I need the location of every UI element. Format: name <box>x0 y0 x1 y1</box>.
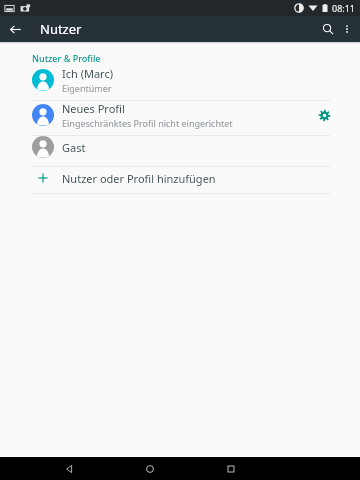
button[interactable]: Zurück <box>4 18 26 40</box>
button[interactable]: Suchen <box>317 18 339 40</box>
staticText: Nutzer <box>40 20 82 38</box>
button[interactable]: Zurück <box>58 458 80 480</box>
staticText: Eingeschränktes Profil nicht eingerichte… <box>62 117 233 129</box>
staticText: 08:11 <box>332 2 356 14</box>
button[interactable]: Profileinstellungen <box>312 103 336 127</box>
button[interactable]: Gast <box>0 136 360 166</box>
staticText: Gast <box>62 140 86 155</box>
staticText: Eigentümer <box>62 82 112 94</box>
staticText: Neues Profil <box>62 101 125 116</box>
staticText: Nutzer oder Profil hinzufügen <box>62 171 216 186</box>
button[interactable]: Weitere Optionen <box>337 19 357 39</box>
button[interactable]: Startbildschirm <box>139 458 161 480</box>
button[interactable]: Nutzer oder Profil hinzufügen <box>0 167 360 193</box>
staticText: Nutzer & Profile <box>32 52 101 64</box>
button[interactable]: Übersicht <box>220 458 242 480</box>
button[interactable]: Neues Profil <box>0 101 360 135</box>
button[interactable]: Ich (Marc) <box>0 66 360 100</box>
staticText: Ich (Marc) <box>62 66 114 81</box>
